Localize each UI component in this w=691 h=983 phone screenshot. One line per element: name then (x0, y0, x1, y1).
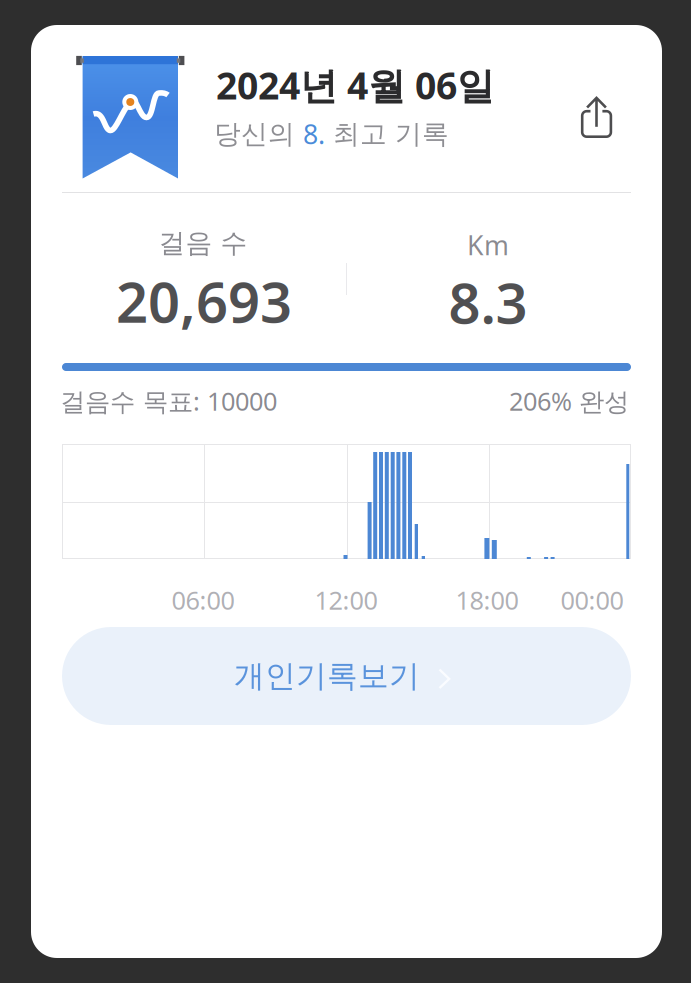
staticText: 18:00 (455, 583, 518, 617)
staticText: 걸음수 목표: 10000 (60, 384, 277, 418)
staticText: Km (467, 227, 509, 263)
button[interactable]: 개인기록보기 (62, 627, 631, 725)
staticText: 당신의 (214, 118, 303, 150)
staticText: 20,693 (116, 264, 292, 338)
staticText: 206% 완성 (509, 384, 629, 418)
staticText: 최고 기록 (325, 118, 449, 150)
staticText: 2024년 4월 06일 (216, 60, 494, 110)
button[interactable]: Share (567, 83, 631, 147)
staticText: 8. (303, 116, 325, 152)
staticText: 00:00 (560, 583, 623, 617)
staticText: 8.3 (448, 265, 527, 339)
staticText: 12:00 (314, 583, 377, 617)
staticText: 개인기록보기 (234, 657, 420, 695)
staticText: 걸음 수 (158, 227, 247, 259)
staticText: 06:00 (171, 583, 234, 617)
